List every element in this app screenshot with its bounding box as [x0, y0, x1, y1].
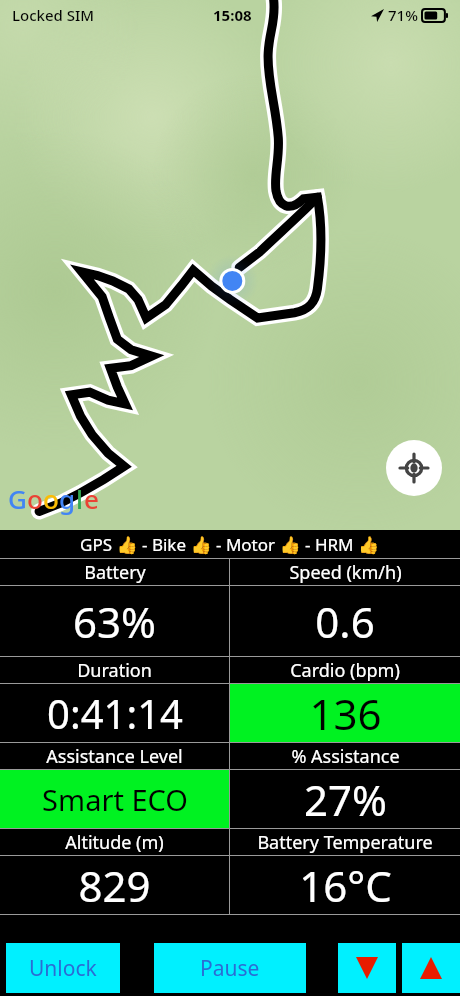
staticText: 15:08: [213, 5, 252, 25]
staticText: Battery: [84, 560, 146, 585]
staticText: Battery Temperature: [257, 830, 433, 855]
button[interactable]: Pause: [154, 943, 306, 993]
staticText: 63%: [73, 593, 156, 650]
staticText: Pause: [200, 954, 260, 983]
button[interactable]: 16°C: [230, 856, 460, 914]
staticText: Cardio (bpm): [290, 658, 400, 683]
staticText: G: [8, 481, 27, 516]
button[interactable]: 63%: [0, 586, 229, 656]
staticText: Speed (km/h): [289, 560, 402, 585]
staticText: Unlock: [29, 954, 97, 983]
button[interactable]: Smart ECO: [0, 770, 229, 828]
staticText: 71%: [388, 5, 418, 25]
button[interactable]: 829: [0, 856, 229, 914]
staticText: o: [43, 481, 59, 516]
button[interactable]: Unlock: [6, 943, 120, 993]
staticText: Assistance Level: [46, 744, 183, 769]
staticText: 0:41:14: [47, 686, 183, 740]
staticText: 27%: [304, 771, 387, 828]
staticText: 0.6: [315, 593, 375, 650]
button[interactable]: 0:41:14: [0, 684, 229, 742]
staticText: Duration: [77, 658, 152, 683]
button[interactable]: GPS 👍 - Bike 👍 - Motor 👍 - HRM 👍: [0, 530, 460, 558]
staticText: 16°C: [299, 857, 392, 914]
staticText: e: [84, 481, 99, 516]
staticText: 829: [78, 857, 151, 914]
button[interactable]: 136: [230, 684, 460, 742]
button[interactable]: My location: [386, 440, 442, 496]
button[interactable]: 27%: [230, 770, 460, 828]
button[interactable]: Decrease assistance: [338, 943, 396, 993]
staticText: g: [59, 481, 76, 516]
button[interactable]: 0.6: [230, 586, 460, 656]
staticText: % Assistance: [291, 744, 400, 769]
button[interactable]: Increase assistance: [402, 943, 460, 993]
staticText: l: [76, 481, 84, 516]
staticText: 136: [309, 685, 382, 742]
staticText: Locked SIM: [12, 5, 95, 25]
staticText: o: [27, 481, 43, 516]
staticText: GPS 👍 - Bike 👍 - Motor 👍 - HRM 👍: [80, 533, 380, 556]
staticText: Altitude (m): [65, 830, 164, 855]
staticText: Smart ECO: [42, 780, 188, 819]
